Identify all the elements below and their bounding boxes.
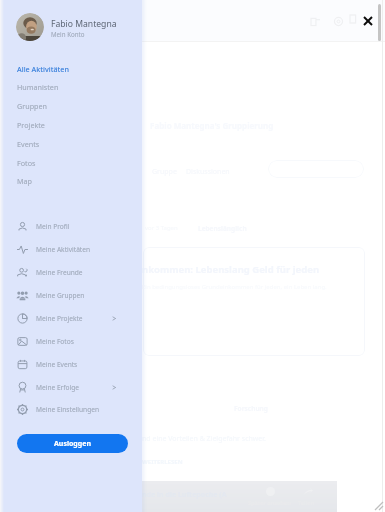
- button[interactable]: Meine Events: [0, 353, 142, 376]
- staticText: WEITERLESEN: [142, 458, 183, 466]
- staticText: Alle Aktivitäten: [17, 64, 69, 74]
- staticText: Meine Fotos: [36, 337, 74, 346]
- staticText: Meine Einstellungen: [36, 405, 100, 414]
- button[interactable]: Schließen: [359, 12, 377, 30]
- staticText: Map: [17, 176, 32, 186]
- button[interactable]: Konto: [329, 12, 347, 30]
- button[interactable]: Fotos: [0, 153, 142, 172]
- staticText: Lebenslänglich: [198, 224, 247, 233]
- staticText: Diskussionen: [186, 167, 230, 177]
- button[interactable]: Ausloggen: [17, 434, 128, 453]
- button[interactable]: Alle Aktivitäten: [0, 59, 142, 78]
- staticText: Meine Events: [36, 360, 78, 369]
- staticText: Meine Aktivitäten: [36, 245, 91, 254]
- button[interactable]: Meine Fotos: [0, 330, 142, 353]
- button[interactable]: Projekte: [0, 115, 142, 134]
- staticText: Humanisten: [17, 82, 59, 92]
- staticText: Fotos: [17, 158, 36, 168]
- button[interactable]: Meine Freunde: [0, 261, 142, 284]
- button[interactable]: Menü: [347, 12, 361, 26]
- staticText: Gruppe: [152, 167, 177, 177]
- staticText: Events: [17, 139, 40, 149]
- staticText: Mein Konto: [51, 30, 85, 38]
- staticText: nkommen: Lebenslang Geld für jeden: [142, 263, 320, 276]
- button[interactable]: Gruppen: [0, 96, 142, 115]
- button[interactable]: Fabio Mantegna: [0, 0, 142, 52]
- staticText: Meine Freunde: [36, 268, 83, 277]
- staticText: Fabio Mantegna's Gruppierung: [150, 120, 274, 131]
- staticText: Ausloggen: [54, 439, 91, 449]
- staticText: nd eine Vorteilen & Zielgefahr schwer.: [142, 434, 266, 444]
- staticText: Gruppen: [17, 101, 47, 111]
- staticText: Meine Projekte: [36, 314, 83, 323]
- button[interactable]: Teilen: [306, 12, 324, 30]
- button[interactable]: Meine Projekte: [0, 307, 142, 330]
- staticText: Meine Erfolge: [36, 383, 80, 392]
- staticText: Meine Gruppen: [36, 291, 85, 300]
- button[interactable]: Meine Aktivitäten: [0, 238, 142, 261]
- staticText: Projekte: [17, 120, 45, 130]
- button[interactable]: Map: [0, 171, 142, 190]
- button[interactable]: Meine Erfolge: [0, 376, 142, 399]
- button[interactable]: Meine Einstellungen: [0, 398, 142, 421]
- button[interactable]: Humanisten: [0, 77, 142, 96]
- button[interactable]: Mein Profil: [0, 215, 142, 238]
- staticText: Fabio Mantegna: [51, 18, 117, 30]
- button[interactable]: Meine Gruppen: [0, 284, 142, 307]
- staticText: Mein Profil: [36, 222, 70, 231]
- staticText: Forschung: [234, 404, 268, 413]
- button[interactable]: Events: [0, 134, 142, 153]
